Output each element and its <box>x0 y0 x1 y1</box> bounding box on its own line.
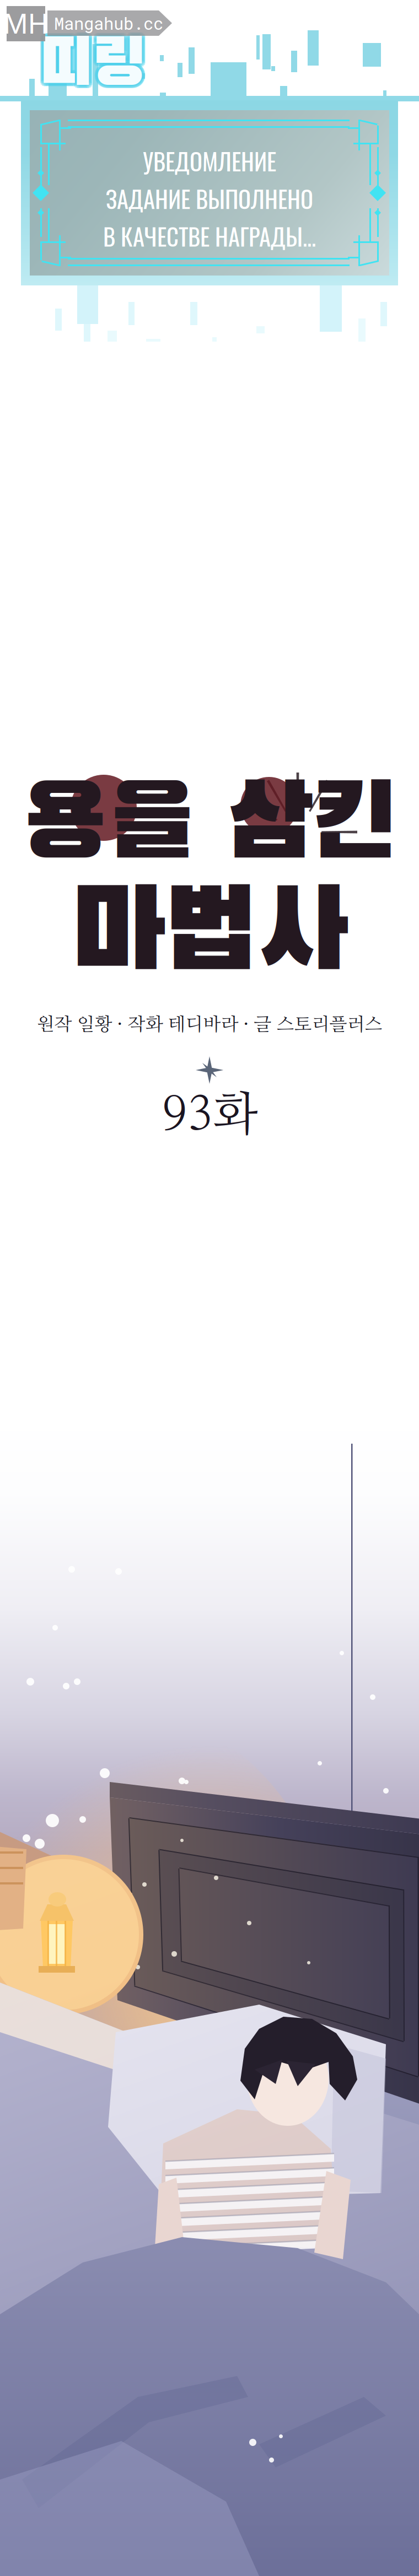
staticText: 띠링 <box>40 37 146 102</box>
staticText: ЗАДАНИЕ ВЫПОЛНЕНО <box>106 181 313 216</box>
staticText: 띠링 <box>41 37 147 101</box>
staticText: 띠링 <box>37 32 143 97</box>
staticText: 용을 삼킨 <box>22 776 397 879</box>
staticText: 원작 일황 · 작화 테디바라 · 글 스토리플러스 <box>37 1016 382 1034</box>
staticText: 띠링 <box>40 30 146 95</box>
staticText: 띠링 <box>43 34 149 98</box>
staticText: 띠링 <box>40 34 146 98</box>
staticText: 띠링 <box>43 35 148 100</box>
staticText: 띠링 <box>43 32 148 97</box>
staticText: УВЕДОМЛЕНИЕ <box>143 143 276 178</box>
staticText: 마법사 <box>71 881 348 993</box>
staticText: 띠링 <box>36 34 142 98</box>
staticText: 띠링 <box>38 37 144 101</box>
staticText: 93화 <box>162 1092 257 1139</box>
staticText: 띠링 <box>41 31 147 96</box>
staticText: MH <box>3 7 49 40</box>
staticText: 띠링 <box>38 31 144 96</box>
staticText: В КАЧЕСТВЕ НАГРАДЫ... <box>103 219 316 253</box>
staticText: 띠링 <box>37 35 143 100</box>
staticText: Mangahub.cc <box>54 12 163 34</box>
